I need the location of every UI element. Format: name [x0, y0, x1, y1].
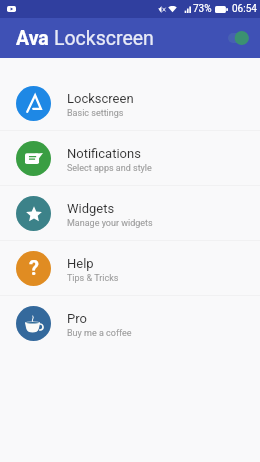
- staticText: Manage your widgets: [67, 218, 153, 229]
- staticText: Pro: [67, 311, 87, 326]
- staticText: Select apps and style: [67, 163, 152, 174]
- button[interactable]: Enable lockscreen: [215, 26, 249, 50]
- staticText: Tips & Tricks: [67, 273, 119, 284]
- staticText: ?: [29, 256, 39, 279]
- button[interactable]: Notifications: [0, 131, 260, 185]
- button[interactable]: Widgets: [0, 186, 260, 240]
- staticText: Notifications: [67, 146, 141, 161]
- button[interactable]: Pro: [0, 296, 260, 350]
- button[interactable]: Lockscreen: [0, 76, 260, 130]
- staticText: Buy me a coffee: [67, 328, 132, 339]
- staticText: 73%: [193, 3, 212, 15]
- staticText: Widgets: [67, 201, 115, 216]
- staticText: Ava: [16, 27, 54, 50]
- staticText: Basic settings: [67, 108, 124, 119]
- staticText: Help: [67, 256, 94, 271]
- button[interactable]: ?: [0, 241, 260, 295]
- staticText: Lockscreen: [54, 27, 154, 50]
- staticText: Lockscreen: [67, 91, 134, 106]
- staticText: 06:54: [232, 3, 257, 15]
